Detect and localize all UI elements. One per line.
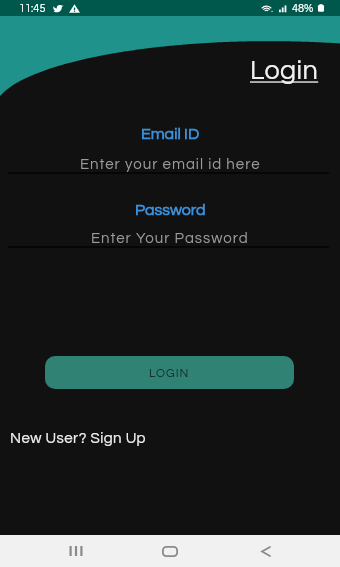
staticText: 48% xyxy=(292,3,314,14)
staticText: New User? Sign Up xyxy=(10,431,146,446)
staticText: Password xyxy=(135,202,206,218)
staticText: Enter Your Password xyxy=(91,231,249,246)
staticText: Login xyxy=(250,57,319,85)
staticText: LOGIN xyxy=(149,367,190,379)
staticText: Email ID xyxy=(141,126,200,142)
button[interactable]: Back xyxy=(246,535,286,567)
button[interactable]: Recent apps xyxy=(56,535,96,567)
button[interactable]: LOGIN xyxy=(45,356,294,389)
button[interactable]: Home xyxy=(150,535,190,567)
staticText: Enter your email id here xyxy=(80,157,261,172)
staticText: 11:45 xyxy=(19,3,46,14)
button[interactable]: Login xyxy=(250,57,319,85)
button[interactable]: New User? Sign Up xyxy=(10,431,146,446)
